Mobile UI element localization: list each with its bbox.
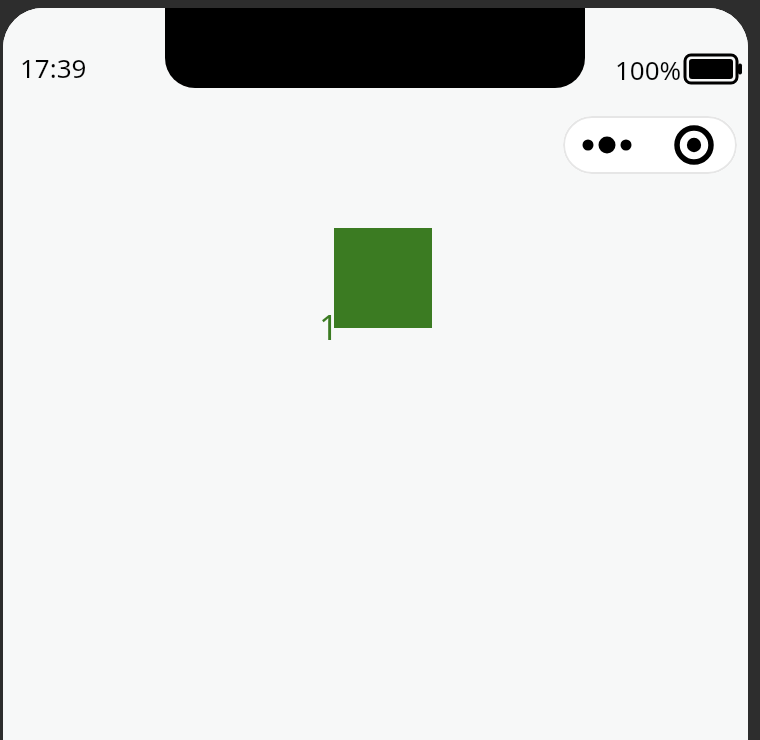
staticText: 100% [615,52,682,87]
button[interactable]: Close mini program [650,116,737,174]
staticText: 17:39 [20,50,87,85]
button[interactable]: More options [563,116,650,174]
staticText: 1 [319,304,339,350]
